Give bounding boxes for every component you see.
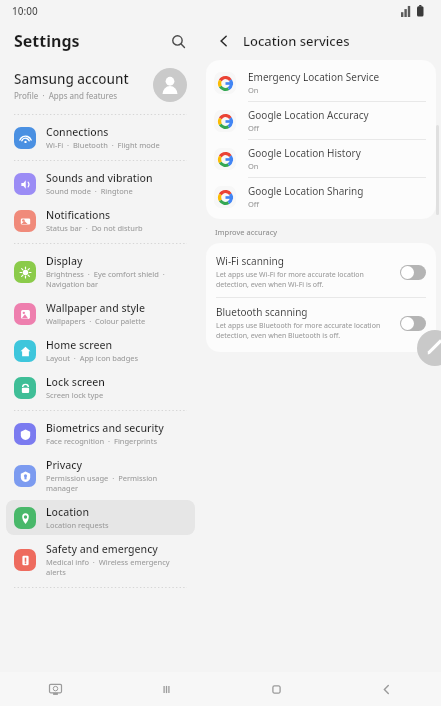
staticText: Google Location Sharing [248,184,364,198]
staticText: 10:00 [12,4,38,18]
staticText: Google Location History [248,146,361,160]
button[interactable]: Bluetooth scanning [400,316,426,331]
staticText: Let apps use Bluetooth for more accurate… [216,321,381,341]
staticText: Connections [46,125,109,139]
staticText: Profile · Apps and features [14,90,118,101]
staticText: Location requests [46,520,109,530]
button[interactable]: Search [165,28,191,54]
button[interactable]: DeX [0,672,111,706]
button[interactable]: Wi-Fi scanning [206,247,436,297]
staticText: Off [248,199,260,209]
staticText: Face recognition · Fingerprints [46,436,157,446]
button[interactable]: Samsung account [0,60,201,110]
staticText: Layout · App icon badges [46,353,139,363]
staticText: Wi-Fi · Bluetooth · Flight mode [46,140,160,150]
button[interactable]: Connections [6,120,195,155]
staticText: Notifications [46,208,111,222]
button[interactable]: Home screen [6,333,195,368]
staticText: Brightness · Eye comfort shield · Naviga… [46,269,165,289]
staticText: Permission usage · Permission manager [46,473,189,493]
staticText: Bluetooth scanning [216,305,308,319]
staticText: Improve accuracy [215,227,278,237]
button[interactable]: Back [213,30,235,52]
button[interactable]: Display [6,249,195,294]
button[interactable]: Biometrics and security [6,416,195,451]
staticText: Let apps use Wi-Fi for more accurate loc… [216,270,364,290]
button[interactable]: Google Location Sharing [206,178,436,215]
button[interactable]: Lock screen [6,370,195,405]
staticText: Sound mode · Ringtone [46,186,133,196]
button[interactable]: Edit [417,330,441,366]
staticText: Samsung account [14,70,129,88]
staticText: Location [46,505,90,519]
staticText: On [248,161,259,171]
button[interactable]: Sounds and vibration [6,166,195,201]
button[interactable]: Home [221,672,331,706]
staticText: Location services [243,32,350,50]
staticText: Display [46,254,83,268]
staticText: Settings [14,30,165,52]
button[interactable]: Google Location History [206,140,436,177]
button[interactable]: Privacy [6,453,195,498]
button[interactable]: Recents [111,672,221,706]
button[interactable]: Location [6,500,195,535]
button[interactable]: Emergency Location Service [206,64,436,101]
staticText: Home screen [46,338,113,352]
staticText: Biometrics and security [46,421,164,435]
button[interactable]: Back [331,672,441,706]
button[interactable]: Wi-Fi scanning [400,265,426,280]
button[interactable]: Wallpaper and style [6,296,195,331]
button[interactable]: Safety and emergency [6,537,195,582]
staticText: Sounds and vibration [46,171,153,185]
staticText: Wi-Fi scanning [216,254,284,268]
staticText: Status bar · Do not disturb [46,223,143,233]
staticText: Medical info · Wireless emergency alerts [46,557,189,577]
staticText: On [248,85,259,95]
staticText: Wallpapers · Colour palette [46,316,146,326]
staticText: Google Location Accuracy [248,108,369,122]
staticText: Emergency Location Service [248,70,380,84]
staticText: Off [248,123,260,133]
button[interactable]: Google Location Accuracy [206,102,436,139]
staticText: Screen lock type [46,390,104,400]
staticText: Privacy [46,458,82,472]
button[interactable]: Notifications [6,203,195,238]
staticText: Safety and emergency [46,542,158,556]
button[interactable]: Bluetooth scanning [206,298,436,348]
staticText: Lock screen [46,375,105,389]
staticText: Wallpaper and style [46,301,145,315]
